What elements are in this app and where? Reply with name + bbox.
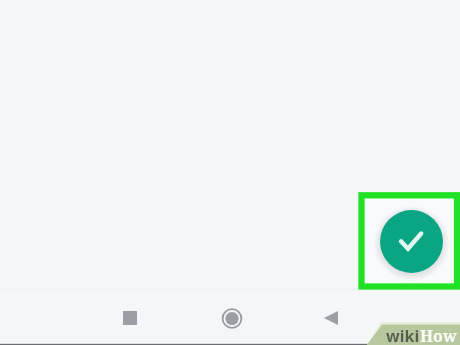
staticText: wiki (386, 325, 420, 345)
button[interactable]: Confirm (380, 210, 443, 273)
button[interactable]: Back (300, 289, 362, 344)
button[interactable]: Recent apps (98, 289, 160, 344)
button[interactable]: Home (201, 289, 263, 344)
staticText: How (420, 325, 457, 345)
